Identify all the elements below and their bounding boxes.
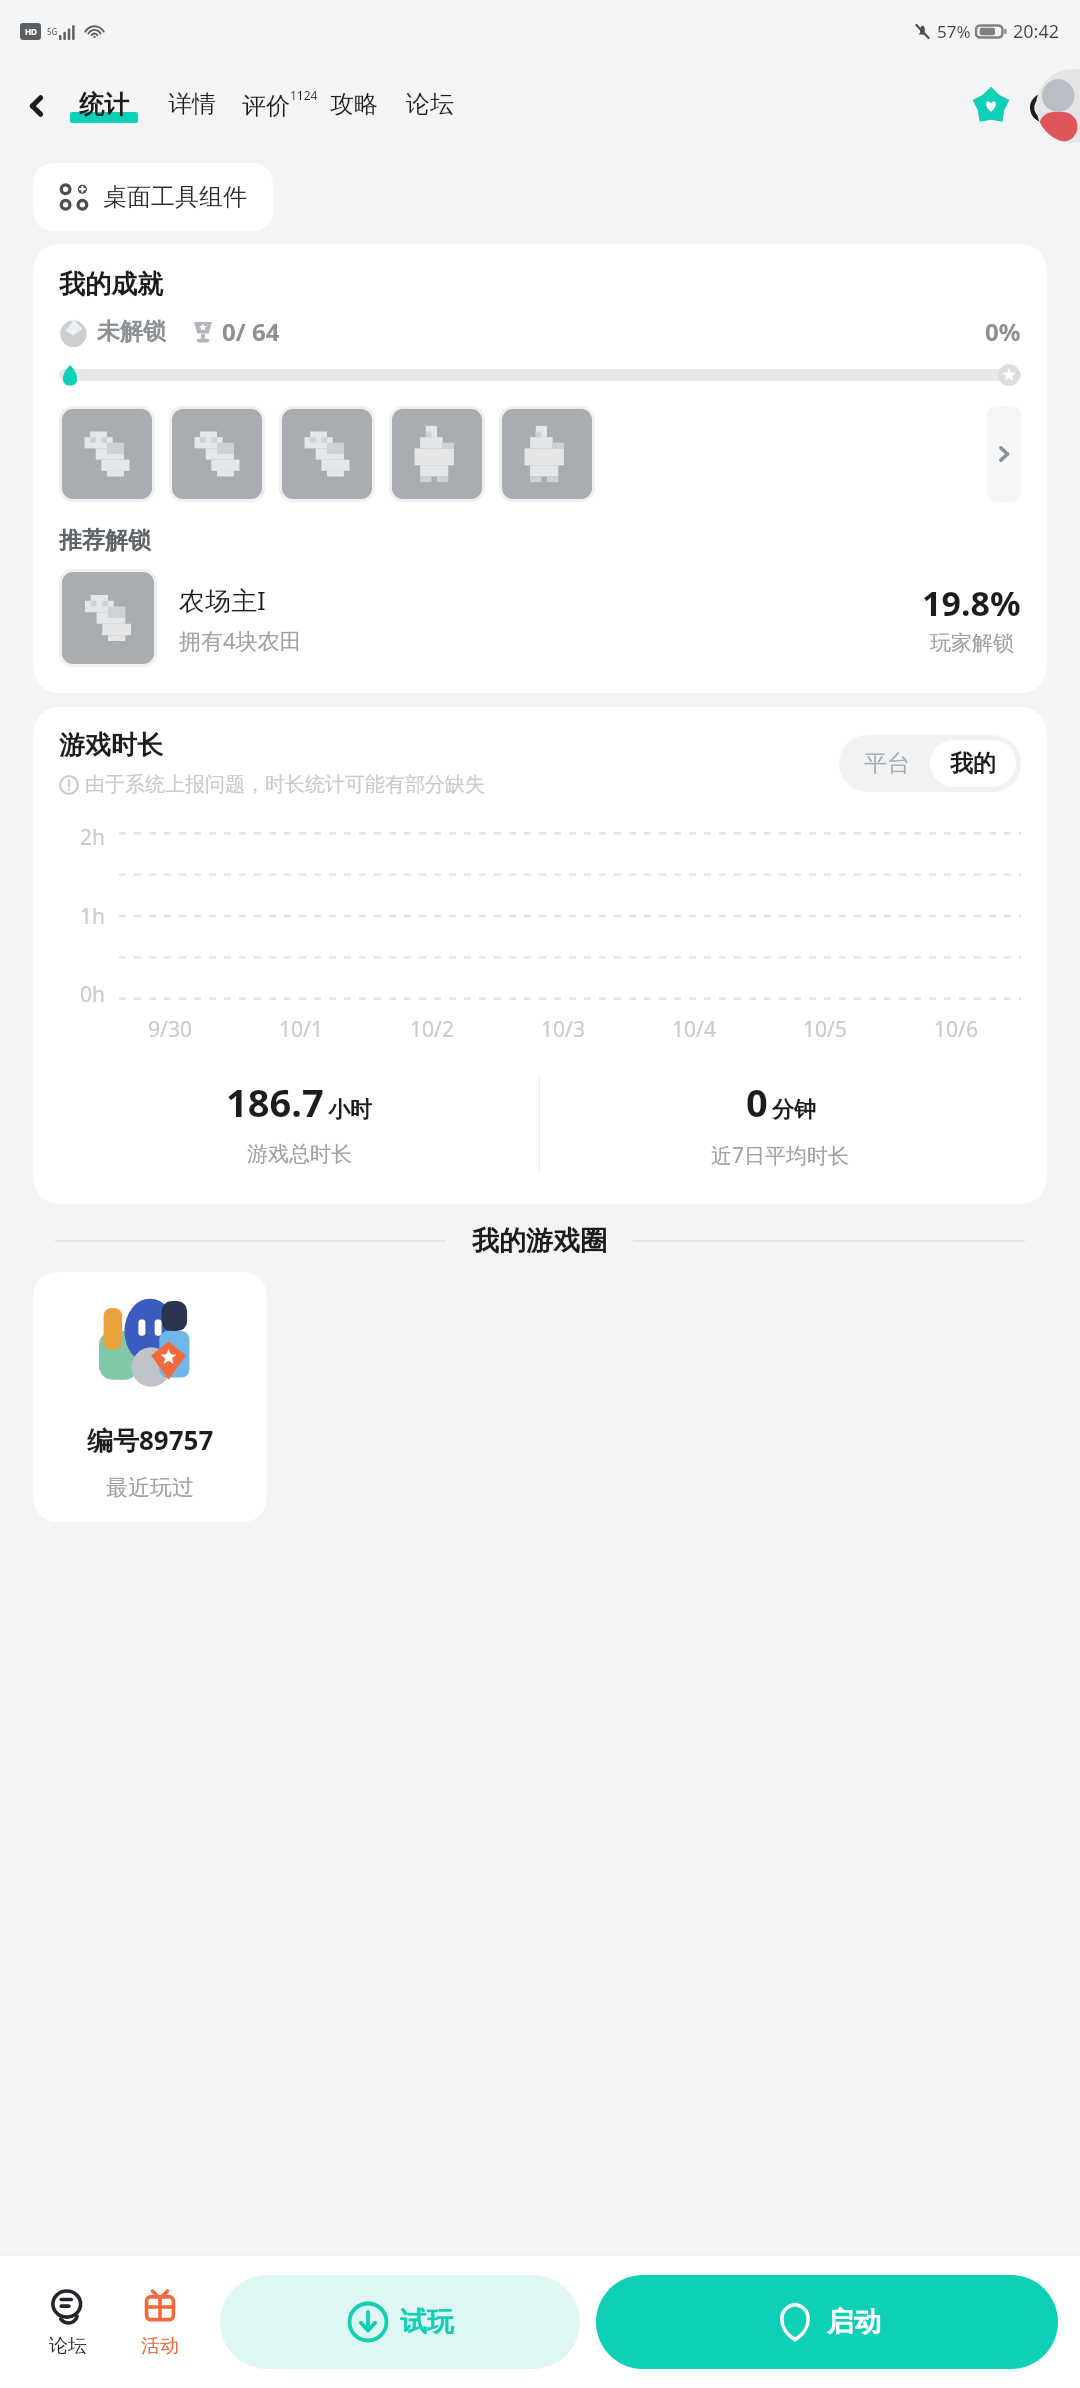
button[interactable]: Locked achievement: [172, 409, 262, 499]
button[interactable]: 攻略: [326, 89, 382, 123]
staticText: 19.8%: [922, 580, 1021, 626]
button[interactable]: 论坛: [22, 2256, 114, 2388]
staticText: 1124: [290, 87, 318, 103]
staticText: 9/30: [148, 1015, 192, 1044]
button[interactable]: More achievements: [987, 406, 1021, 502]
staticText: 10/2: [410, 1015, 454, 1044]
button[interactable]: Locked achievement: [392, 409, 482, 499]
staticText: 0/ 64: [222, 315, 280, 348]
staticText: 桌面工具组件: [103, 182, 247, 212]
staticText: 平台: [864, 749, 910, 778]
button[interactable]: Back: [14, 83, 60, 129]
staticText: 1h: [80, 902, 105, 931]
staticText: 玩家解锁: [930, 630, 1014, 656]
staticText: 试玩: [400, 2305, 454, 2339]
button[interactable]: Favorite: [966, 81, 1016, 131]
staticText: 我的: [950, 749, 996, 778]
button[interactable]: 我的成就: [33, 244, 1047, 693]
button[interactable]: 试玩: [220, 2275, 580, 2369]
staticText: 由于系统上报问题，时长统计可能有部分缺失: [85, 772, 485, 797]
staticText: 编号89757: [87, 1422, 214, 1458]
button[interactable]: Profile: [1036, 69, 1080, 143]
staticText: 拥有4块农田: [179, 625, 302, 655]
button[interactable]: 桌面工具组件: [33, 163, 273, 231]
staticText: 最近玩过: [106, 1474, 194, 1502]
button[interactable]: 编号89757: [33, 1272, 267, 1522]
staticText: 0: [746, 1076, 768, 1128]
button[interactable]: 统计: [64, 89, 144, 124]
button[interactable]: Locked achievement: [282, 409, 372, 499]
staticText: 游戏总时长: [247, 1141, 352, 1167]
button[interactable]: Locked achievement: [502, 409, 592, 499]
staticText: 未解锁: [97, 317, 166, 346]
staticText: 评价: [242, 91, 290, 121]
button[interactable]: 启动: [596, 2275, 1058, 2369]
staticText: 推荐解锁: [59, 526, 151, 555]
staticText: 57%: [937, 20, 971, 43]
staticText: 游戏时长: [59, 729, 163, 762]
staticText: 20:42: [1013, 19, 1060, 44]
staticText: 小时: [328, 1096, 372, 1124]
staticText: HD: [25, 26, 37, 37]
button[interactable]: Locked achievement: [62, 409, 152, 499]
staticText: 0h: [80, 980, 105, 1009]
staticText: 论坛: [406, 89, 454, 119]
staticText: 攻略: [330, 89, 378, 119]
button[interactable]: 论坛: [402, 89, 458, 123]
staticText: 活动: [141, 2334, 179, 2358]
staticText: 2h: [80, 823, 105, 852]
button[interactable]: 评价: [240, 87, 320, 125]
staticText: 论坛: [49, 2334, 87, 2358]
staticText: 10/1: [279, 1015, 323, 1044]
staticText: 启动: [827, 2305, 881, 2339]
staticText: 详情: [168, 89, 216, 119]
staticText: 农场主I: [179, 582, 266, 618]
staticText: 186.7: [226, 1076, 324, 1128]
staticText: 10/6: [934, 1015, 978, 1044]
staticText: 5G: [47, 26, 58, 37]
staticText: 10/4: [672, 1015, 716, 1044]
staticText: 10/3: [541, 1015, 585, 1044]
button[interactable]: Locked achievement: [62, 572, 154, 664]
staticText: 统计: [79, 89, 129, 120]
staticText: 0%: [985, 315, 1021, 348]
button[interactable]: 平台: [844, 740, 930, 787]
button[interactable]: Share: [1020, 81, 1070, 131]
button[interactable]: 详情: [164, 89, 220, 123]
staticText: 近7日平均时长: [711, 1141, 850, 1170]
button[interactable]: 我的: [930, 740, 1016, 787]
button[interactable]: 活动: [114, 2256, 206, 2388]
staticText: 我的成就: [59, 268, 163, 301]
staticText: 我的游戏圈: [472, 1224, 607, 1258]
staticText: 分钟: [772, 1096, 816, 1124]
staticText: 10/5: [803, 1015, 847, 1044]
